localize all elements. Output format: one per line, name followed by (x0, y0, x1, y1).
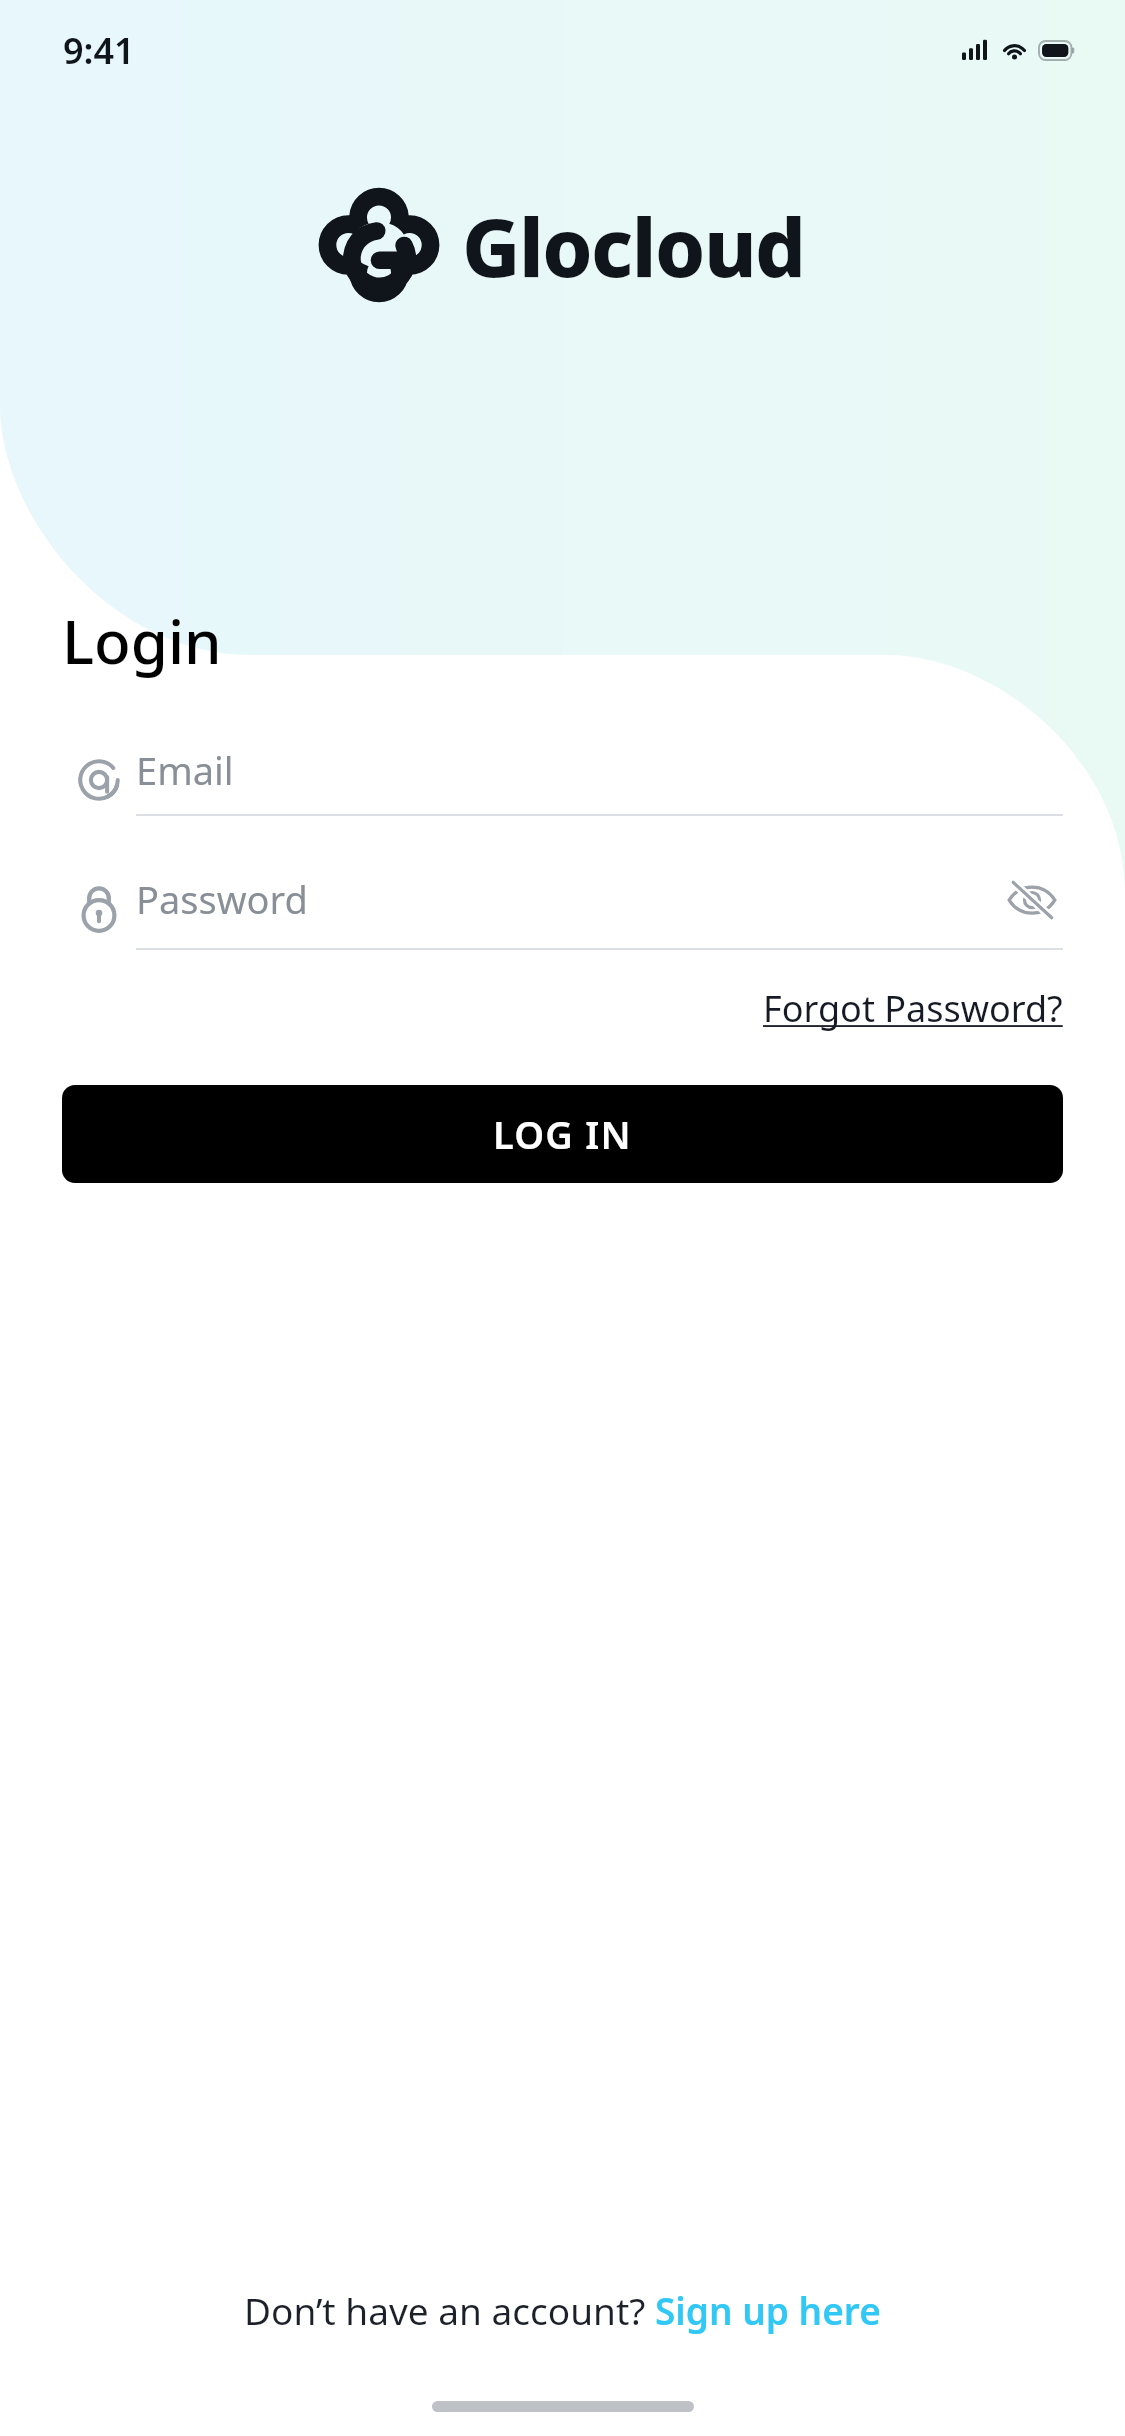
button[interactable]: Email (62, 744, 1063, 816)
staticText: Glocloud (462, 191, 805, 300)
staticText: Login (62, 600, 222, 682)
staticText: Email (136, 744, 1063, 796)
staticText: Don’t have an account? (244, 2285, 655, 2335)
button[interactable]: Password (62, 868, 1063, 950)
button[interactable]: Show password (1001, 868, 1063, 930)
button[interactable]: LOG IN (62, 1085, 1063, 1183)
button[interactable]: Sign up here (655, 2285, 881, 2335)
staticText: Password (136, 873, 1001, 925)
staticText: LOG IN (493, 1108, 632, 1160)
staticText: 9:41 (63, 26, 135, 75)
button[interactable]: Forgot Password? (763, 984, 1063, 1033)
